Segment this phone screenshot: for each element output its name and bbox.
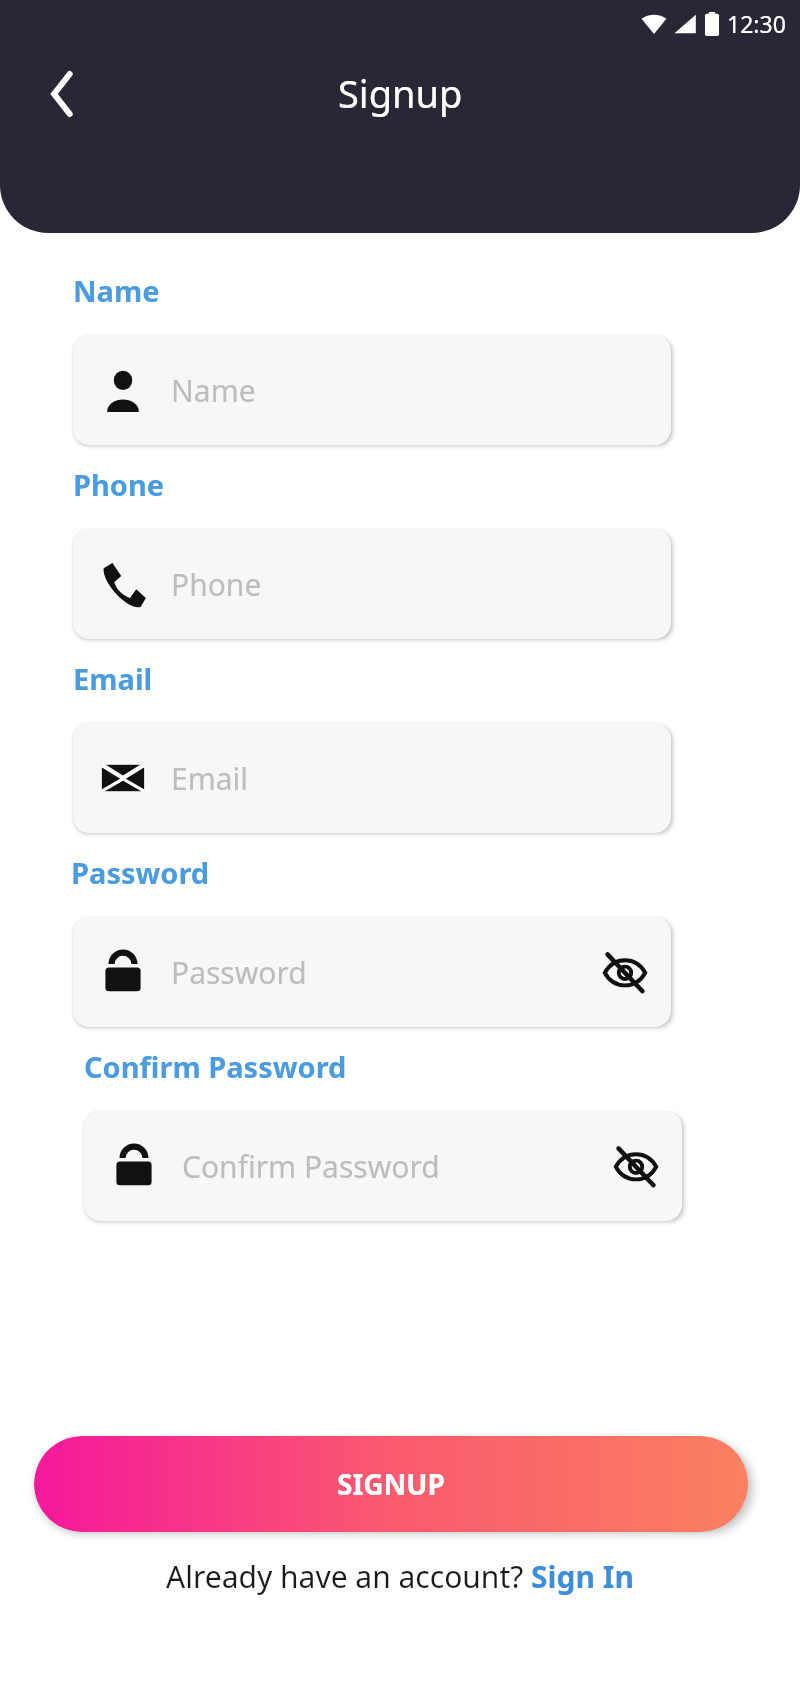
staticText: 12:30: [727, 8, 786, 39]
staticText: Confirm Password: [84, 1047, 347, 1086]
button[interactable]: Already have an account? Sign In: [166, 1556, 634, 1597]
other: Password: [101, 950, 145, 994]
other: Person: [101, 368, 145, 412]
button[interactable]: Email: [73, 723, 671, 833]
staticText: Signup: [338, 67, 463, 119]
button[interactable]: Password: [73, 917, 671, 1027]
button[interactable]: Toggle password visibility: [604, 1134, 668, 1198]
button[interactable]: Back: [36, 66, 92, 122]
staticText: Password: [171, 952, 593, 993]
staticText: SIGNUP: [337, 1465, 445, 1503]
staticText: Name: [171, 370, 671, 411]
staticText: Phone: [171, 564, 671, 605]
staticText: Phone: [73, 465, 165, 504]
staticText: Name: [73, 271, 160, 310]
other: Email: [101, 756, 145, 800]
button[interactable]: Phone: [73, 529, 671, 639]
other: Phone: [101, 562, 145, 606]
button[interactable]: SIGNUP: [34, 1436, 748, 1532]
staticText: Confirm Password: [182, 1146, 604, 1187]
other: Password: [112, 1144, 156, 1188]
staticText: Password: [71, 853, 210, 892]
staticText: Email: [73, 659, 153, 698]
staticText: Already have an account? Sign In: [166, 1556, 634, 1597]
staticText: Email: [171, 758, 671, 799]
button[interactable]: Password: [84, 1111, 682, 1221]
button[interactable]: Toggle password visibility: [593, 940, 657, 1004]
button[interactable]: Person: [73, 335, 671, 445]
